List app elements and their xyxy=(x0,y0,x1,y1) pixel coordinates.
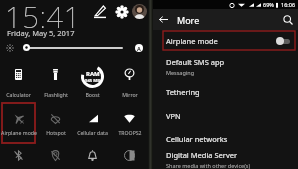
button[interactable] xyxy=(37,144,74,169)
staticText: Airplane mode xyxy=(166,36,218,46)
button[interactable]: Profile xyxy=(132,4,147,19)
staticText: Tethering xyxy=(166,87,200,97)
staticText: RAM xyxy=(86,70,100,78)
staticText: Hotspot xyxy=(46,129,66,136)
button[interactable]: Default SMS app xyxy=(153,52,298,80)
staticText: Boost xyxy=(85,91,100,98)
button[interactable]: Cellular data xyxy=(74,102,111,144)
staticText: Friday, May 5, 2017 xyxy=(7,28,75,38)
button[interactable]: Cellular networks xyxy=(153,128,298,150)
staticText: Mirror xyxy=(122,91,138,98)
staticText: Cellular networks xyxy=(166,134,228,144)
staticText: Share media with other device(s) xyxy=(166,162,251,169)
button[interactable]: Calculator xyxy=(0,57,37,102)
button[interactable]: VPN xyxy=(153,104,298,128)
staticText: 69% xyxy=(263,1,274,8)
staticText: Digital Media Server xyxy=(166,150,238,160)
staticText: 15:41 xyxy=(5,0,82,36)
button[interactable]: Hotspot xyxy=(37,102,74,144)
button[interactable]: Airplane mode xyxy=(0,102,37,144)
staticText: Airplane mode xyxy=(1,129,37,136)
button[interactable]: Back xyxy=(153,9,174,30)
staticText: Messaging xyxy=(166,69,195,76)
staticText: More xyxy=(177,14,200,26)
staticText: 16:06 xyxy=(281,1,296,8)
button[interactable]: Search xyxy=(277,9,298,30)
staticText: TROOPS2 xyxy=(118,129,142,136)
button[interactable]: Settings xyxy=(115,5,129,19)
button[interactable] xyxy=(111,144,148,169)
staticText: Default SMS app xyxy=(166,57,225,67)
button[interactable]: Flashlight xyxy=(37,57,74,102)
button[interactable]: Digital Media Server xyxy=(153,150,298,169)
button[interactable]: TROOPS2 xyxy=(111,102,148,144)
button[interactable]: Mirror xyxy=(111,57,148,102)
button[interactable]: Edit xyxy=(93,5,107,19)
button[interactable] xyxy=(74,144,111,169)
button[interactable] xyxy=(0,144,37,169)
staticText: Flashlight xyxy=(44,91,68,98)
staticText: VPN xyxy=(166,111,181,121)
button[interactable]: Tethering xyxy=(153,80,298,104)
staticText: A xyxy=(137,45,141,52)
staticText: 945 MB xyxy=(85,78,101,84)
button[interactable]: Airplane mode xyxy=(153,30,298,52)
button[interactable]: RAM xyxy=(74,57,111,102)
staticText: Calculator xyxy=(6,91,31,98)
staticText: Cellular data xyxy=(77,129,108,136)
button[interactable]: Auto brightness xyxy=(135,44,143,52)
